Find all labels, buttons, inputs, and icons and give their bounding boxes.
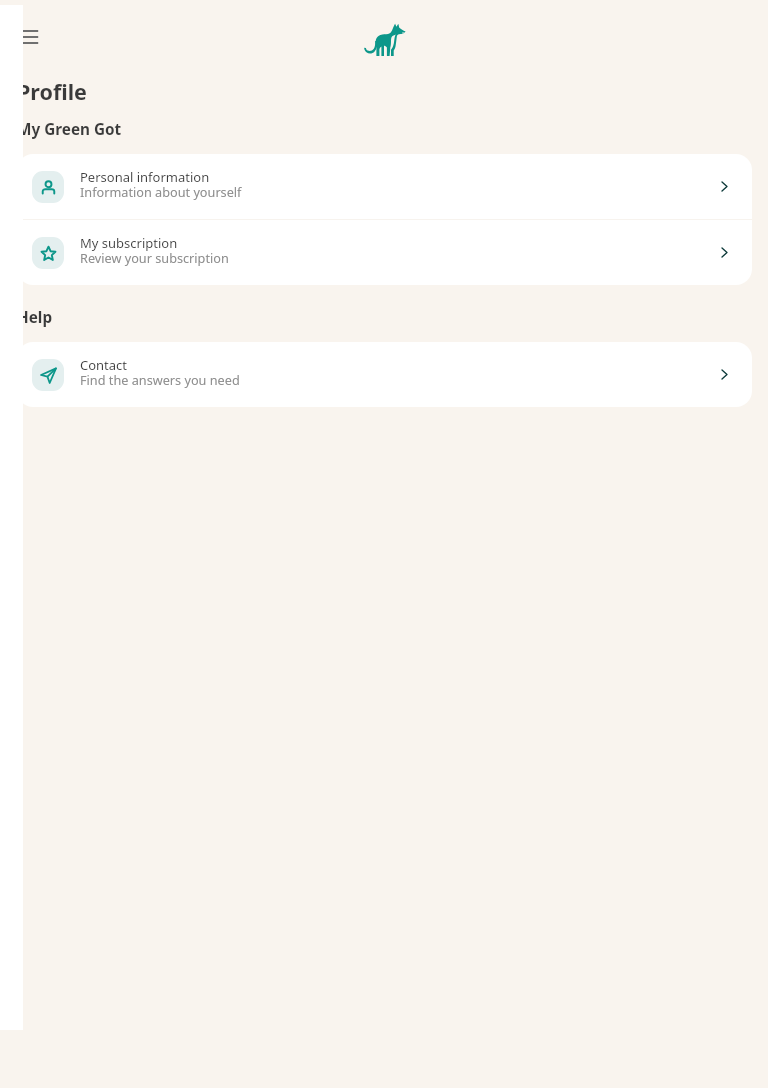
button[interactable]: Contact [17,342,752,407]
button[interactable]: Menu [9,17,49,57]
button[interactable]: My subscription [17,220,752,285]
staticText: Find the answers you need [80,371,240,388]
staticText: Help [17,307,53,328]
staticText: Personal information [80,168,210,186]
staticText: Information about yourself [80,183,242,200]
staticText: My subscription [80,234,178,252]
button[interactable]: Personal information [17,154,752,219]
staticText: Contact [80,356,128,374]
staticText: Review your subscription [80,249,229,266]
staticText: Profile [17,77,87,106]
staticText: My Green Got [17,119,122,140]
